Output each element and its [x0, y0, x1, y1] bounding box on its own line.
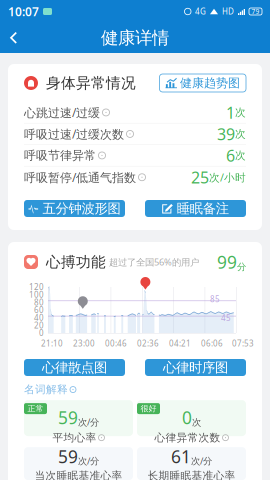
staticText: 长期睡眠基准心率	[147, 469, 235, 480]
staticText: 心律异常次数	[154, 431, 220, 444]
button[interactable]: 心律时序图	[145, 359, 246, 376]
staticText: 02:36	[137, 338, 159, 349]
staticText: 呼吸过速/过缓次数	[24, 126, 124, 142]
staticText: 99	[217, 250, 237, 273]
staticText: 0	[39, 328, 44, 338]
staticText: 20	[34, 320, 44, 331]
staticText: 正常	[27, 404, 43, 413]
staticText: 85	[210, 294, 220, 304]
staticText: 59	[58, 406, 78, 429]
staticText: 五分钟波形图	[42, 200, 120, 217]
staticText: 当次睡眠基准心率	[34, 469, 122, 480]
staticText: 21:10	[41, 338, 63, 349]
staticText: 健康趋势图	[180, 76, 240, 90]
staticText: 6	[226, 145, 235, 166]
staticText: 04:21	[169, 338, 191, 349]
staticText: 次	[192, 417, 201, 428]
staticText: 健康详情	[101, 27, 169, 49]
staticText: 120	[29, 282, 44, 292]
staticText: 心搏功能	[46, 253, 106, 271]
staticText: 10:07	[8, 3, 39, 19]
staticText: 次/分	[191, 455, 212, 467]
staticText: 1	[226, 102, 235, 123]
staticText: 次/分	[78, 455, 99, 467]
staticText: 4G	[195, 6, 206, 17]
staticText: 平均心率	[52, 431, 96, 444]
staticText: 次/分	[78, 416, 99, 428]
button[interactable]: 名词解释	[24, 382, 76, 397]
staticText: HD	[222, 6, 234, 17]
staticText: 心律时序图	[163, 359, 228, 376]
staticText: 79	[251, 7, 259, 16]
staticText: 25	[191, 167, 209, 188]
staticText: 心律散点图	[42, 359, 107, 376]
staticText: 呼吸节律异常	[24, 148, 96, 163]
staticText: 100	[29, 289, 44, 300]
staticText: 80	[34, 297, 44, 308]
staticText: 次	[235, 106, 246, 119]
button[interactable]: 健康趋势图	[159, 74, 246, 92]
staticText: 45	[221, 313, 231, 323]
staticText: 39	[217, 123, 235, 144]
staticText: 身体异常情况	[46, 74, 136, 92]
button[interactable]: Back	[0, 23, 26, 53]
staticText: 次	[235, 127, 246, 140]
staticText: 超过了全国56%的用户	[109, 256, 199, 268]
staticText: 23:00	[73, 338, 95, 349]
staticText: 59	[58, 445, 78, 468]
staticText: 呼吸暂停/低通气指数	[24, 169, 136, 185]
staticText: 名词解释	[24, 383, 68, 396]
staticText: 0	[182, 406, 192, 429]
staticText: 分	[237, 261, 246, 272]
staticText: 06:06	[201, 338, 223, 349]
staticText: 60	[34, 305, 44, 315]
staticText: 睡眠备注	[177, 200, 229, 217]
button[interactable]: 五分钟波形图	[24, 200, 125, 217]
staticText: 40	[34, 312, 44, 323]
staticText: 很好	[140, 404, 156, 413]
staticText: 07:53	[232, 338, 254, 349]
button[interactable]: 睡眠备注	[145, 200, 246, 217]
staticText: 次	[235, 149, 246, 162]
staticText: 心跳过速/过缓	[24, 104, 100, 120]
button[interactable]: 心律散点图	[24, 359, 125, 376]
staticText: 次/小时	[209, 170, 246, 184]
staticText: 61	[171, 445, 191, 468]
staticText: 00:46	[105, 338, 127, 349]
